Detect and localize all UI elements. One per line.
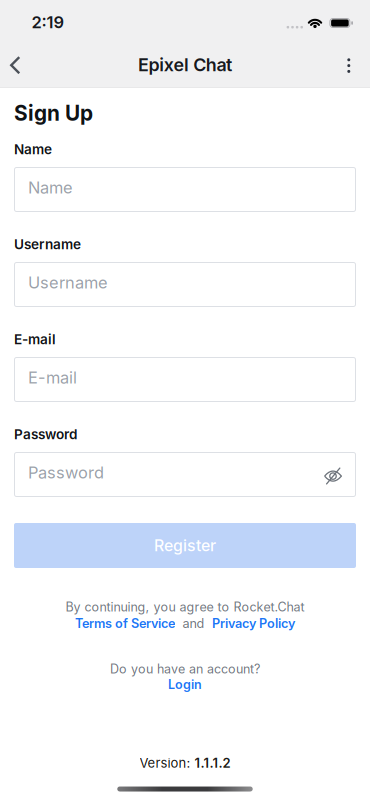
button[interactable]: Back: [1, 43, 32, 87]
button[interactable]: Name: [14, 167, 356, 212]
button[interactable]: Username: [14, 262, 356, 307]
staticText: Terms of Service: [75, 616, 175, 631]
staticText: Username: [28, 273, 108, 292]
button[interactable]: More options: [333, 44, 364, 87]
staticText: Name: [28, 178, 73, 197]
staticText: Password: [28, 463, 104, 482]
staticText: Register: [154, 536, 216, 555]
staticText: Sign Up: [14, 101, 93, 125]
staticText: Do you have an account?: [110, 662, 260, 676]
staticText: E-mail: [28, 368, 77, 387]
staticText: Name: [14, 141, 52, 157]
button[interactable]: E-mail: [14, 357, 356, 402]
button[interactable]: Show password: [324, 466, 356, 483]
staticText: By continuing, you agree to Rocket.Chat: [65, 600, 304, 614]
button[interactable]: Password: [14, 452, 356, 497]
staticText: Password: [14, 426, 77, 442]
staticText: Username: [14, 236, 81, 252]
button[interactable]: Login: [168, 677, 202, 692]
staticText: Epixel Chat: [138, 54, 232, 75]
staticText: 2:19: [31, 12, 64, 32]
staticText: Login: [168, 677, 202, 692]
button[interactable]: Privacy Policy: [212, 616, 295, 631]
staticText: and: [182, 616, 204, 631]
staticText: E-mail: [14, 331, 56, 347]
button[interactable]: Terms of Service: [75, 616, 175, 631]
button[interactable]: Register: [14, 523, 356, 568]
staticText: Privacy Policy: [212, 616, 295, 631]
staticText: Version: 1.1.1.2: [139, 755, 230, 771]
